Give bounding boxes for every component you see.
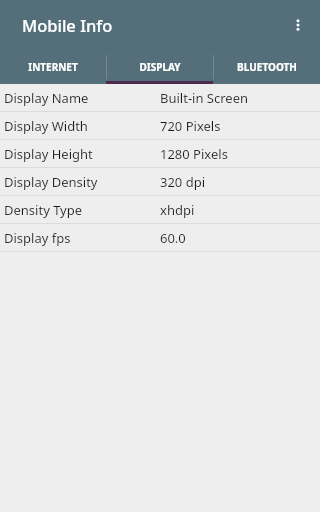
- staticText: 1280 Pixels: [160, 145, 228, 163]
- staticText: Display Density: [4, 173, 98, 191]
- button[interactable]: BLUETOOTH: [214, 50, 320, 84]
- button[interactable]: INTERNET: [0, 50, 106, 84]
- staticText: 320 dpi: [160, 173, 206, 191]
- staticText: Display Width: [4, 117, 88, 135]
- button[interactable]: Display Height: [0, 140, 320, 167]
- staticText: 720 Pixels: [160, 117, 221, 135]
- staticText: Density Type: [4, 201, 83, 219]
- staticText: Display Name: [4, 89, 89, 107]
- button[interactable]: Display Density: [0, 168, 320, 195]
- staticText: Mobile Info: [22, 14, 113, 36]
- staticText: 60.0: [160, 229, 186, 247]
- button[interactable]: Density Type: [0, 196, 320, 223]
- button[interactable]: Display Width: [0, 112, 320, 139]
- staticText: Display fps: [4, 229, 71, 247]
- staticText: Display Height: [4, 145, 93, 163]
- staticText: xhdpi: [160, 201, 195, 219]
- staticText: BLUETOOTH: [237, 60, 297, 74]
- staticText: INTERNET: [28, 60, 78, 74]
- staticText: Built-in Screen: [160, 89, 249, 107]
- button[interactable]: DISPLAY: [107, 50, 213, 84]
- staticText: DISPLAY: [139, 60, 181, 74]
- button[interactable]: Display fps: [0, 224, 320, 251]
- button[interactable]: More options: [280, 7, 316, 43]
- button[interactable]: Display Name: [0, 84, 320, 111]
